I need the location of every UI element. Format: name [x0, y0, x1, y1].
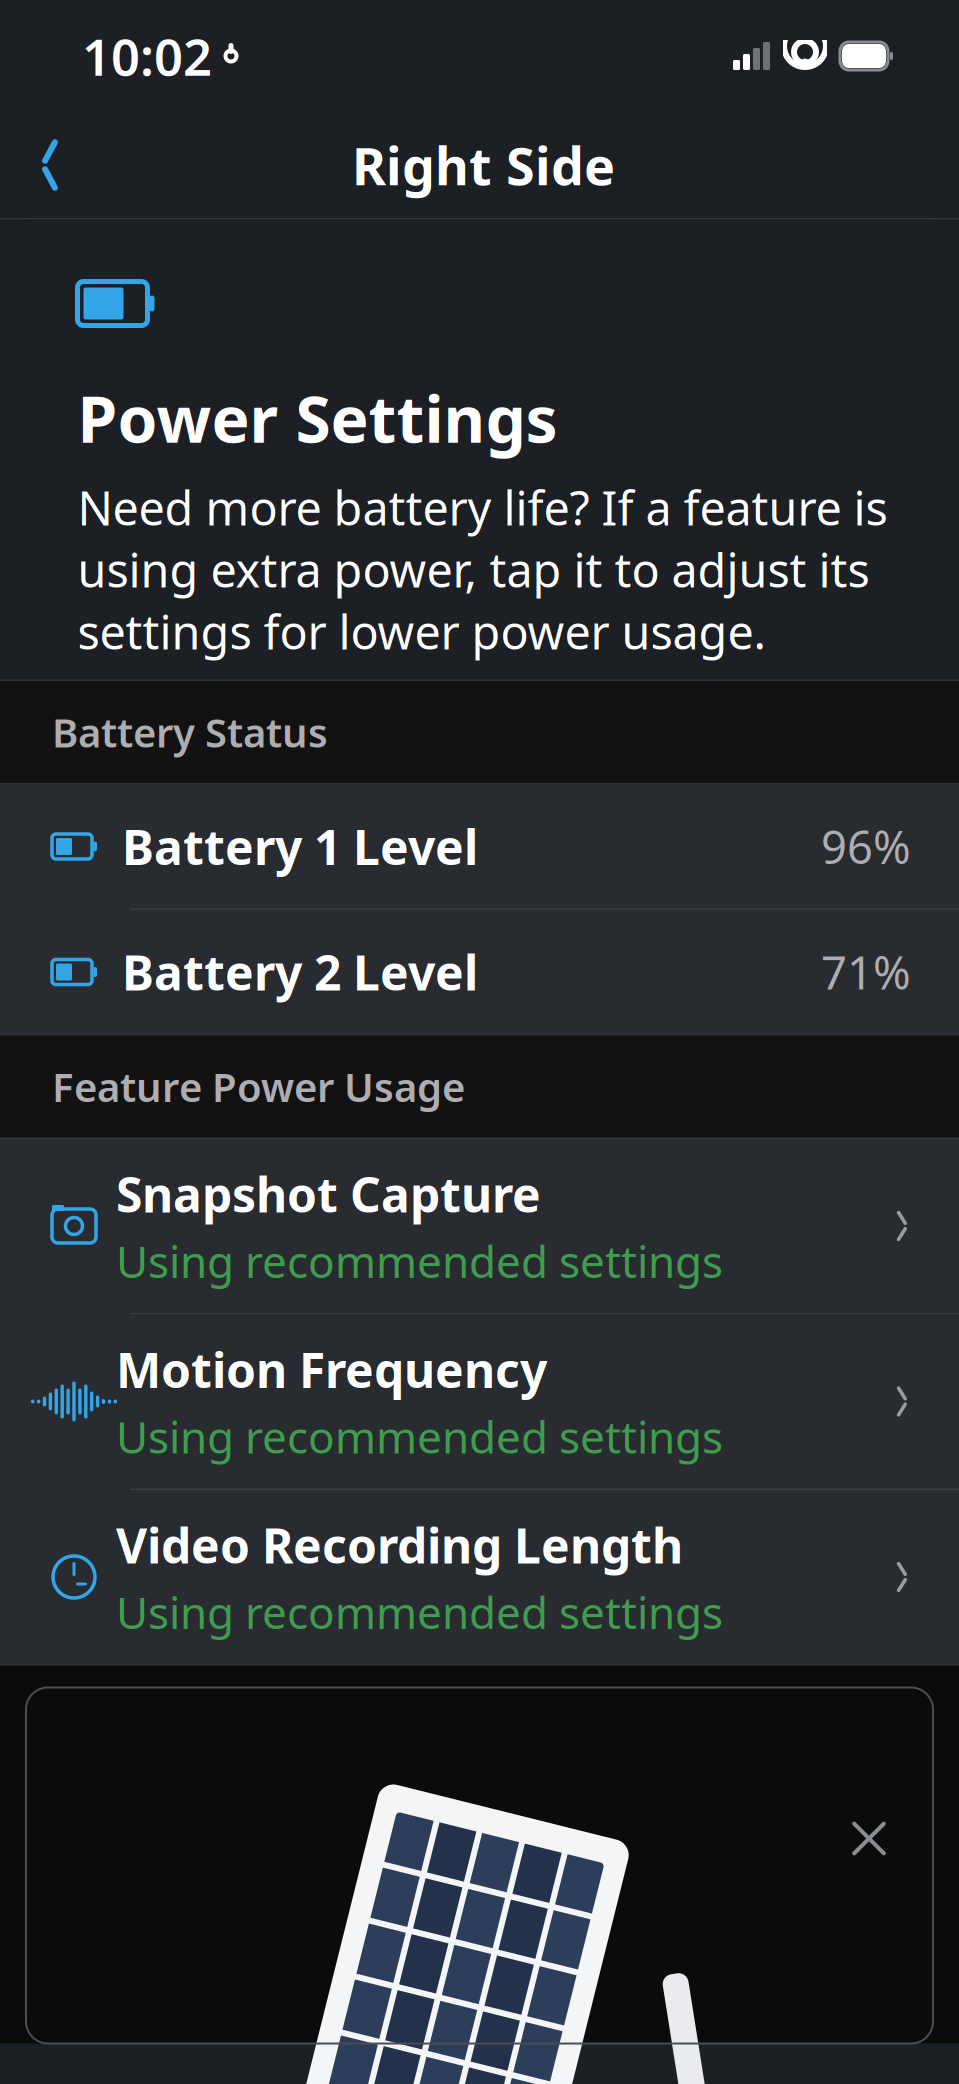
- button[interactable]: Video Recording Length: [0, 1490, 959, 1664]
- staticText: Battery 2 Level: [122, 940, 478, 1004]
- button[interactable]: Battery 2 Level: [0, 910, 959, 1034]
- staticText: Snapshot Capture: [116, 1162, 541, 1226]
- staticText: 96%: [821, 816, 911, 877]
- staticText: Using recommended settings: [116, 1583, 723, 1641]
- staticText: Battery 1 Level: [122, 815, 478, 878]
- staticText: Using recommended settings: [116, 1232, 723, 1290]
- button[interactable]: Back: [8, 123, 92, 207]
- staticText: Motion Frequency: [116, 1337, 547, 1401]
- button[interactable]: Battery 1 Level: [0, 784, 959, 910]
- staticText: Battery Status: [52, 705, 328, 758]
- staticText: Video Recording Length: [116, 1513, 683, 1577]
- staticText: Using recommended settings: [116, 1407, 723, 1466]
- staticText: Power Settings: [77, 375, 557, 460]
- button[interactable]: Motion Frequency: [0, 1314, 959, 1490]
- button[interactable]: Snapshot Capture: [0, 1139, 959, 1314]
- staticText: Right Side: [352, 130, 615, 200]
- staticText: 71%: [821, 942, 911, 1002]
- staticText: Feature Power Usage: [52, 1060, 465, 1113]
- staticText: Need more battery life? If a feature is …: [77, 476, 887, 662]
- button[interactable]: Close: [831, 1800, 907, 1876]
- staticText: 10:02: [82, 22, 212, 90]
